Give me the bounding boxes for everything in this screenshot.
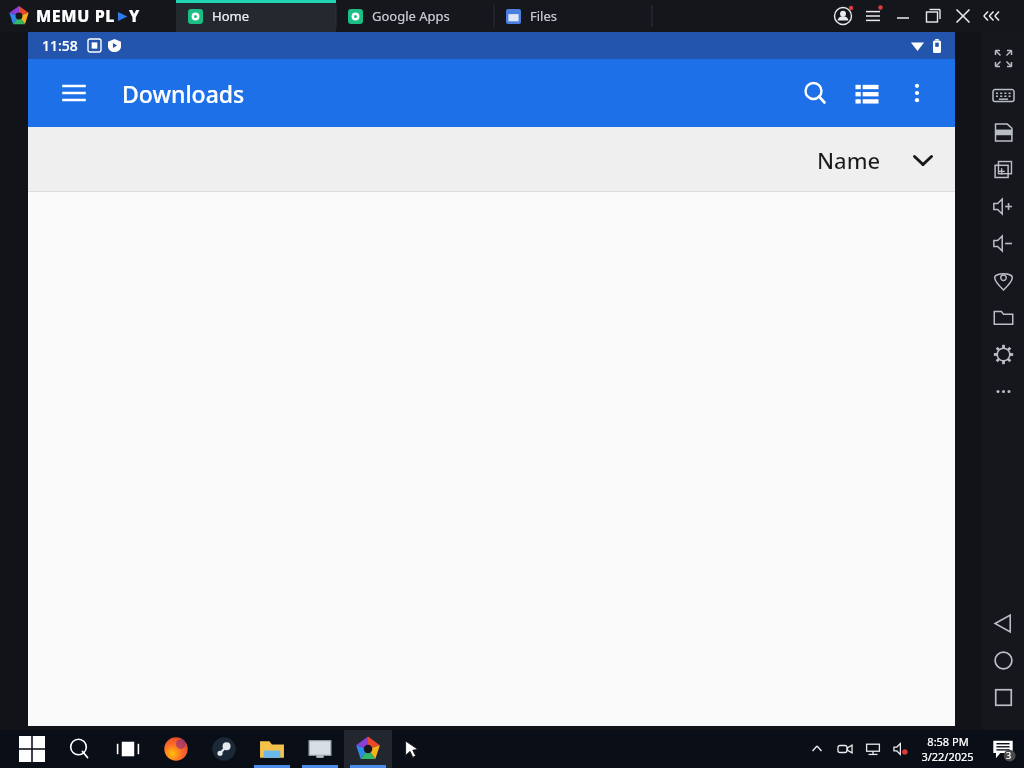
button[interactable]: Show hidden icons xyxy=(803,735,831,763)
button[interactable]: Volume up xyxy=(985,188,1022,225)
button[interactable]: Settings xyxy=(985,336,1022,373)
button[interactable]: Files xyxy=(494,0,652,32)
staticText: 3/22/2025 xyxy=(921,749,974,764)
button[interactable]: Camera xyxy=(831,735,859,763)
button[interactable]: Network xyxy=(859,735,887,763)
button[interactable]: More xyxy=(985,373,1022,410)
staticText: 8:58 PM xyxy=(927,734,969,749)
button[interactable]: Install APK xyxy=(985,114,1022,151)
staticText: Downloads xyxy=(122,78,245,109)
button[interactable]: Volume down xyxy=(985,225,1022,262)
button[interactable]: Multi window xyxy=(985,151,1022,188)
staticText: Files xyxy=(530,7,558,25)
button[interactable]: Photos xyxy=(296,730,344,768)
staticText: Home xyxy=(212,7,249,25)
button[interactable]: Notifications, 3 new xyxy=(986,732,1020,766)
button[interactable]: Search xyxy=(56,730,104,768)
button[interactable]: MEmu Play xyxy=(344,730,392,768)
button[interactable]: 8:58 PM xyxy=(921,734,974,764)
button[interactable]: Location xyxy=(985,262,1022,299)
staticText: Google Apps xyxy=(372,7,450,25)
button[interactable]: Open navigation drawer xyxy=(52,71,96,115)
staticText: Name xyxy=(817,145,881,175)
button[interactable]: Account xyxy=(828,1,858,31)
button[interactable]: Steam xyxy=(200,730,248,768)
staticText: MEMU PL xyxy=(36,5,116,27)
button[interactable]: Maximize xyxy=(918,1,948,31)
button[interactable]: Home xyxy=(176,0,336,32)
button[interactable]: File Explorer xyxy=(248,730,296,768)
button[interactable]: Keyboard xyxy=(985,77,1022,114)
button[interactable]: Home xyxy=(985,642,1022,679)
staticText: Y xyxy=(129,5,140,27)
button[interactable]: Back xyxy=(985,605,1022,642)
button[interactable]: Minimize xyxy=(888,1,918,31)
button[interactable]: Shared folder xyxy=(985,299,1022,336)
button[interactable]: Fullscreen xyxy=(985,40,1022,77)
button[interactable]: Search xyxy=(791,69,839,117)
button[interactable]: Firefox xyxy=(152,730,200,768)
button[interactable]: Change view xyxy=(843,69,891,117)
button[interactable]: Task view xyxy=(104,730,152,768)
button[interactable]: Name xyxy=(817,138,945,182)
button[interactable]: Menu xyxy=(858,1,888,31)
button[interactable]: Collapse sidebar xyxy=(978,1,1008,31)
staticText: 11:58 xyxy=(42,36,78,55)
button[interactable]: Recents xyxy=(985,679,1022,716)
button[interactable]: More options xyxy=(893,69,941,117)
button[interactable]: Google Apps xyxy=(336,0,494,32)
button[interactable]: Volume muted xyxy=(887,735,915,763)
staticText: 3 xyxy=(1006,749,1012,761)
button[interactable]: Start xyxy=(8,730,56,768)
button[interactable]: Close xyxy=(948,1,978,31)
